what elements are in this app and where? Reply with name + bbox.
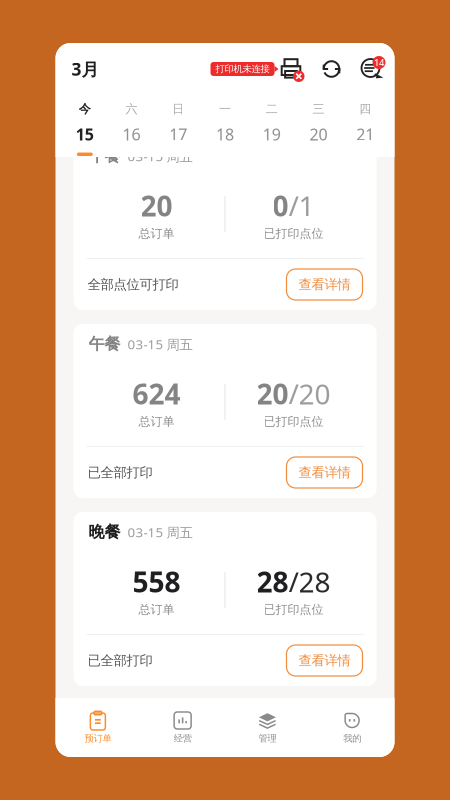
staticText: 查看详情 [298, 464, 350, 481]
staticText: 16 [123, 124, 141, 145]
staticText: 28 [298, 563, 330, 600]
staticText: 0 [272, 187, 288, 224]
staticText: 1 [298, 187, 314, 224]
staticText: 20 [309, 124, 327, 145]
staticText: 624 [132, 375, 180, 412]
staticText: 3月 [71, 57, 98, 80]
staticText: 总订单 [138, 414, 174, 429]
staticText: 15 [76, 124, 94, 145]
staticText: 已全部打印 [87, 652, 152, 669]
staticText: 21 [356, 124, 374, 145]
staticText: 晚餐 [88, 522, 120, 542]
staticText: 03-15 周五 [127, 147, 192, 165]
staticText: 四 [359, 102, 371, 116]
button[interactable]: 二 [248, 102, 295, 156]
button[interactable]: 查看详情 [286, 645, 362, 676]
staticText: 20 [298, 375, 330, 412]
button[interactable]: 四 [342, 102, 388, 156]
staticText: / [288, 375, 298, 412]
staticText: 午餐 [88, 334, 120, 354]
staticText: 全部点位可打印 [87, 276, 178, 293]
staticText: 558 [132, 563, 180, 600]
staticText: 预订单 [84, 733, 111, 744]
button[interactable]: 六 [108, 102, 155, 156]
staticText: 日 [172, 102, 184, 116]
button[interactable]: 预订单 [55, 698, 140, 757]
button[interactable]: 今 [61, 102, 108, 156]
staticText: / [288, 187, 298, 224]
button[interactable]: Messages [360, 58, 382, 80]
button[interactable]: Printer disconnected [280, 58, 302, 80]
staticText: 经营 [174, 733, 192, 744]
staticText: 17 [169, 124, 187, 145]
staticText: 六 [126, 102, 138, 116]
staticText: 三 [312, 102, 324, 116]
staticText: 打印机未连接 [215, 63, 269, 75]
staticText: 03-15 周五 [127, 335, 192, 353]
button[interactable]: 查看详情 [286, 457, 362, 488]
staticText: 查看详情 [298, 276, 350, 293]
staticText: 28 [256, 563, 288, 600]
staticText: 查看详情 [298, 652, 350, 669]
button[interactable]: 查看详情 [286, 269, 362, 300]
staticText: 总订单 [138, 226, 174, 241]
staticText: 今 [79, 102, 91, 116]
staticText: 已全部打印 [87, 464, 152, 481]
staticText: 我的 [343, 733, 361, 744]
button[interactable]: 日 [155, 102, 202, 156]
button[interactable]: 一 [202, 102, 248, 156]
staticText: 已打印点位 [263, 414, 323, 429]
staticText: 二 [266, 102, 278, 116]
staticText: 20 [140, 187, 172, 224]
button[interactable]: 我的 [310, 698, 395, 757]
staticText: 已打印点位 [263, 602, 323, 617]
button[interactable]: 管理 [225, 698, 310, 757]
staticText: 一 [219, 102, 231, 116]
staticText: 总订单 [138, 602, 174, 617]
staticText: 管理 [258, 733, 276, 744]
staticText: 19 [263, 124, 281, 145]
staticText: 03-15 周五 [127, 523, 192, 541]
staticText: 已打印点位 [263, 226, 323, 241]
button[interactable]: 经营 [140, 698, 225, 757]
staticText: 18 [216, 124, 234, 145]
staticText: 14 [374, 56, 384, 69]
staticText: / [288, 563, 298, 600]
staticText: 20 [256, 375, 288, 412]
staticText: 午餐 [88, 146, 120, 166]
button[interactable]: 三 [295, 102, 342, 156]
button[interactable]: Refresh [320, 58, 342, 80]
